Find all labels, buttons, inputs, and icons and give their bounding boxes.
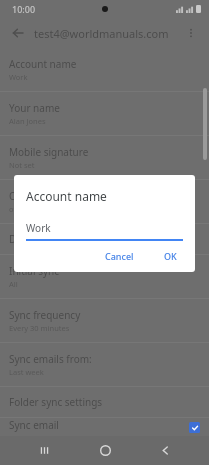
button[interactable]: More options	[181, 23, 201, 43]
staticText: Your name	[9, 101, 60, 115]
staticText: All	[9, 279, 18, 289]
button[interactable]: Folder sync settings	[0, 387, 209, 418]
button[interactable]: Initial sync	[0, 255, 209, 299]
staticText: test4@worldmanuals.com	[34, 26, 181, 41]
button[interactable]: Your name	[0, 92, 209, 136]
staticText: Out of office settings	[9, 189, 108, 203]
staticText: Work	[26, 221, 51, 235]
staticText: Not set	[9, 160, 35, 170]
button[interactable]: Home	[88, 436, 122, 465]
button[interactable]: Out of office settings	[0, 180, 209, 224]
staticText: Sync frequency	[9, 308, 81, 322]
staticText: 10:00	[12, 3, 36, 15]
button[interactable]: Default account	[0, 224, 209, 255]
staticText: Every 30 minutes	[9, 323, 70, 333]
staticText: Default account	[9, 232, 84, 246]
staticText: Work	[9, 72, 28, 82]
button[interactable]: Recent apps	[27, 436, 61, 465]
button[interactable]: Mobile signature	[0, 136, 209, 180]
staticText: Mobile signature	[9, 145, 89, 159]
button[interactable]: Back	[148, 436, 182, 465]
button[interactable]: Sync emails from:	[0, 343, 209, 387]
staticText: Initial sync	[9, 264, 59, 278]
staticText: Last week	[9, 367, 44, 377]
staticText: Account name	[26, 188, 107, 204]
button[interactable]: Sync email	[0, 418, 209, 436]
button[interactable]: Back	[8, 23, 28, 43]
staticText: Sync email	[9, 418, 59, 432]
button[interactable]: Account name	[0, 48, 209, 92]
staticText: Sync emails from:	[9, 352, 92, 366]
button[interactable]: Sync frequency	[0, 299, 209, 343]
staticText: Alan Jones	[9, 116, 46, 126]
staticText: Folder sync settings	[9, 395, 103, 409]
button[interactable]: OK	[158, 246, 183, 266]
staticText: OK	[164, 250, 177, 262]
staticText: Account name	[9, 57, 77, 71]
staticText: Cancel	[105, 250, 134, 262]
staticText: off	[9, 204, 19, 214]
button[interactable]: Cancel	[99, 246, 140, 266]
